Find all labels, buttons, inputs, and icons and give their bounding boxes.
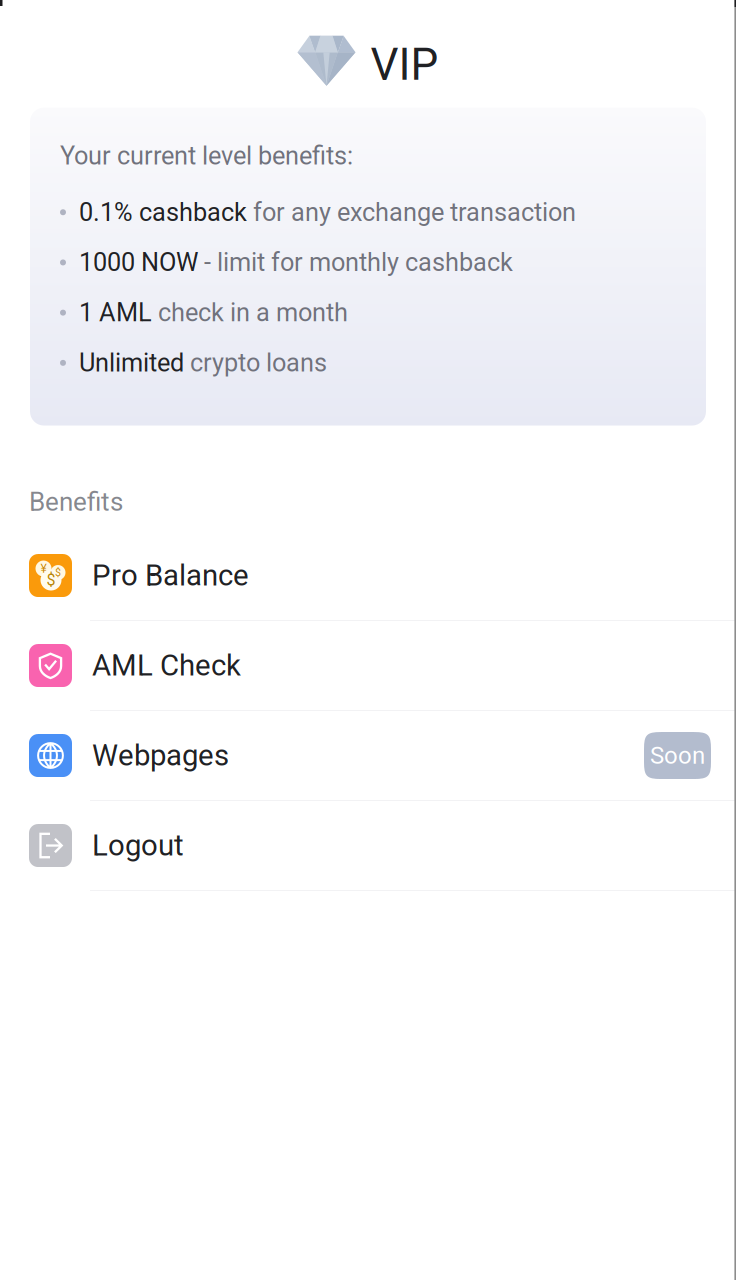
button[interactable]: ¥ — [0, 531, 736, 621]
button[interactable]: Logout — [0, 801, 736, 891]
staticText: ¥ — [40, 561, 46, 576]
staticText: 1 AML — [79, 298, 152, 327]
staticText: - limit for monthly cashback — [198, 248, 513, 277]
staticText: check in a month — [152, 298, 348, 327]
staticText: $ — [46, 571, 55, 589]
staticText: Unlimited — [79, 348, 184, 378]
staticText: 1000 NOW — [79, 248, 198, 277]
staticText: Your current level benefits: — [60, 141, 353, 171]
staticText: Webpages — [92, 738, 229, 773]
staticText: Benefits — [29, 487, 123, 517]
staticText: Logout — [92, 828, 184, 863]
staticText: Pro Balance — [92, 558, 249, 593]
staticText: Soon — [650, 741, 705, 770]
staticText: 0.1% cashback — [79, 197, 247, 227]
staticText: for any exchange transaction — [247, 197, 576, 227]
staticText: crypto loans — [184, 348, 327, 378]
staticText: VIP — [370, 39, 438, 91]
button[interactable]: Webpages — [0, 711, 736, 801]
staticText: AML Check — [92, 648, 241, 683]
staticText: $ — [55, 566, 61, 579]
button[interactable]: AML Check — [0, 621, 736, 711]
